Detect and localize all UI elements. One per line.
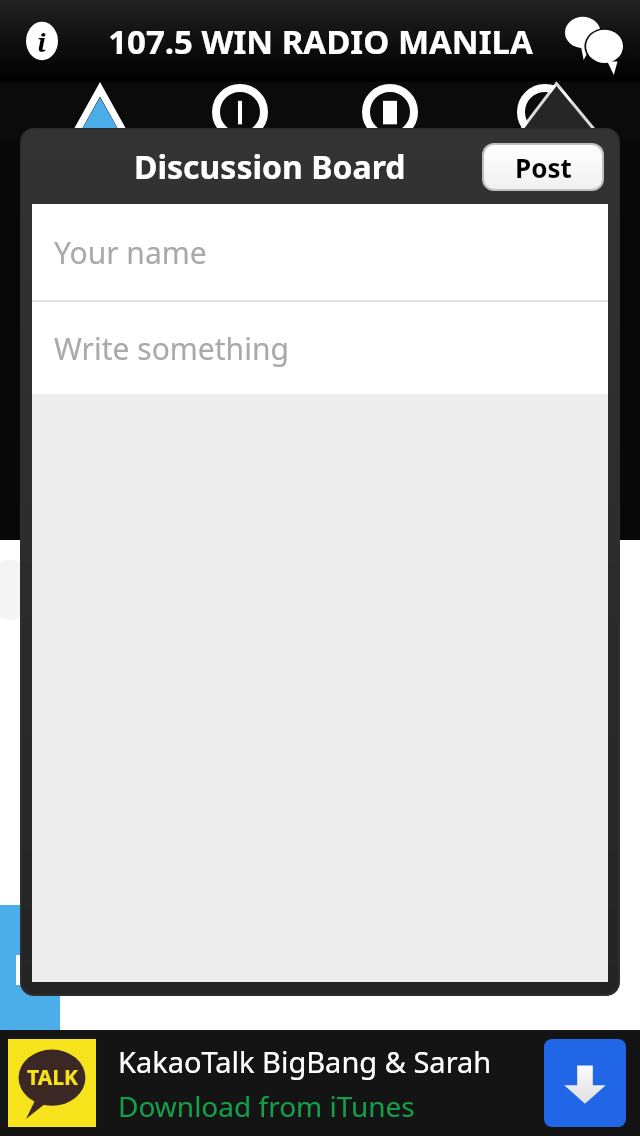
staticText: KakaoTalk BigBang & Sarah xyxy=(118,1042,492,1081)
staticText: TALK xyxy=(27,1063,78,1092)
staticText: Discussion Board xyxy=(134,145,406,189)
button[interactable]: Post xyxy=(484,145,602,189)
button[interactable]: Write something xyxy=(32,302,608,394)
button[interactable]: Information xyxy=(14,13,70,69)
button[interactable]: More xyxy=(490,82,600,142)
staticText: Your name xyxy=(54,232,207,273)
staticText: Download from iTunes xyxy=(118,1087,415,1125)
button[interactable]: Listen xyxy=(185,82,295,142)
staticText: 107.5 WIN RADIO MANILA xyxy=(108,19,533,64)
staticText: i xyxy=(37,24,47,59)
button[interactable]: Your name xyxy=(32,204,608,300)
button[interactable]: TALK xyxy=(0,1030,640,1136)
button[interactable]: Home xyxy=(40,82,160,142)
staticText: Write something xyxy=(54,328,289,369)
staticText: Post xyxy=(515,150,572,185)
button[interactable]: Download xyxy=(544,1039,626,1127)
button[interactable]: Requests xyxy=(335,82,445,142)
button[interactable]: Chat xyxy=(556,3,632,79)
